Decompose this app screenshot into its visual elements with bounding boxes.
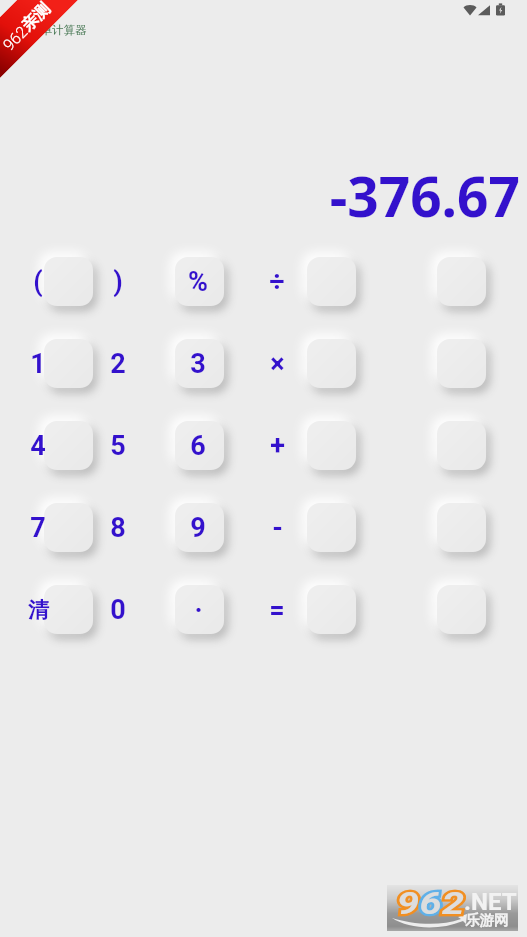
staticText: 4 <box>30 430 46 462</box>
staticText: + <box>270 430 285 462</box>
button[interactable]: 4 <box>0 405 132 486</box>
button[interactable]: 9 <box>264 487 396 568</box>
button[interactable]: 8 <box>132 487 264 568</box>
button[interactable]: - <box>395 487 527 568</box>
staticText: 清 <box>28 597 49 623</box>
button[interactable]: ( <box>0 241 132 322</box>
button[interactable]: % <box>264 241 396 322</box>
button[interactable]: ÷ <box>395 241 527 322</box>
staticText: 0 <box>110 594 126 626</box>
staticText: · <box>194 594 203 626</box>
staticText: 2 <box>442 885 464 922</box>
staticText: 乐游网 <box>465 911 509 929</box>
staticText: - <box>272 512 283 544</box>
button[interactable]: 2 <box>132 323 264 404</box>
staticText: 9 <box>190 512 206 544</box>
button[interactable]: 0 <box>132 569 264 650</box>
button[interactable]: 7 <box>0 487 132 568</box>
button[interactable]: 清 <box>0 569 132 650</box>
staticText: 6 <box>190 430 206 462</box>
staticText: 9 <box>397 885 419 922</box>
button[interactable]: 3 <box>264 323 396 404</box>
button[interactable]: 5 <box>132 405 264 486</box>
button[interactable]: = <box>395 569 527 650</box>
staticText: 8 <box>110 512 126 544</box>
button[interactable]: ) <box>132 241 264 322</box>
staticText: 2 <box>442 885 464 922</box>
staticText: ) <box>113 266 123 298</box>
button[interactable]: 6 <box>264 405 396 486</box>
staticText: 1 <box>30 348 46 380</box>
staticText: .NET <box>464 888 517 916</box>
button[interactable]: + <box>395 405 527 486</box>
staticText: 2 <box>110 348 126 380</box>
staticText: 6 <box>419 885 442 922</box>
staticText: % <box>188 266 208 298</box>
staticText: 5 <box>110 430 126 462</box>
button[interactable]: 1 <box>0 323 132 404</box>
staticText: 亲测 <box>17 0 54 35</box>
staticText: 9 <box>397 885 419 922</box>
staticText: ÷ <box>269 266 285 298</box>
staticText: 6 <box>419 885 442 922</box>
staticText: ( <box>33 266 43 298</box>
staticText: -376.67 <box>0 158 520 233</box>
button[interactable]: × <box>395 323 527 404</box>
staticText: 7 <box>30 512 46 544</box>
staticText: 3 <box>190 348 206 380</box>
staticText: 962 <box>0 22 32 55</box>
button[interactable]: · <box>264 569 396 650</box>
staticText: 简单计算器 <box>29 23 87 37</box>
staticText: = <box>269 594 285 626</box>
staticText: × <box>270 348 285 380</box>
